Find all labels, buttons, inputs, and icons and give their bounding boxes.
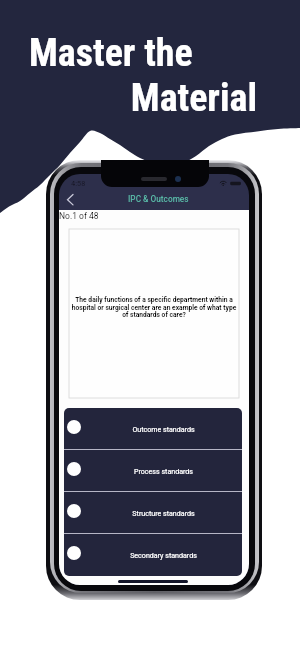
staticText: Master the	[29, 31, 193, 76]
staticText: Secondary standards	[85, 551, 242, 559]
staticText: 4:58	[71, 179, 86, 188]
staticText: Material	[0, 76, 257, 121]
staticText: No.1 of 48	[59, 211, 99, 221]
button[interactable]: Back	[62, 191, 79, 208]
staticText: Structure standards	[85, 509, 242, 517]
staticText: Outcome standards	[85, 425, 242, 433]
button[interactable]: Outcome standards	[64, 408, 242, 449]
staticText: The daily functions of a specific depart…	[70, 296, 238, 318]
button[interactable]: Secondary standards	[64, 534, 242, 575]
staticText: IPC & Outcomes	[128, 194, 189, 204]
button[interactable]: Structure standards	[64, 492, 242, 533]
button[interactable]: Process standards	[64, 450, 242, 491]
staticText: Process standards	[85, 467, 242, 475]
